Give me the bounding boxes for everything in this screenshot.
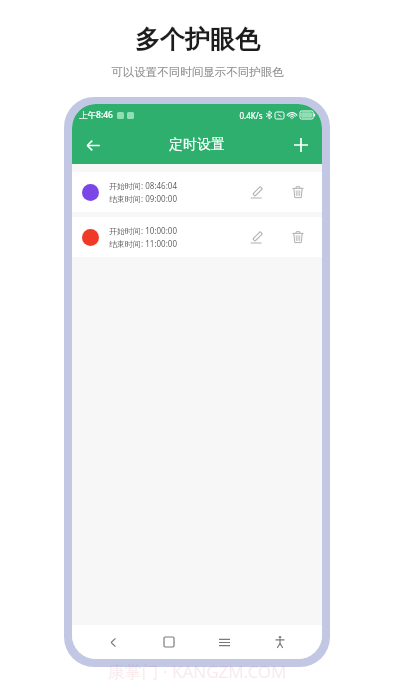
staticText: 0.4K/s — [239, 110, 263, 121]
staticText: 多个护眼色 — [135, 24, 260, 55]
button[interactable]: Back — [76, 128, 110, 162]
staticText: 康掌门 · KANGZM.COM — [107, 660, 287, 683]
button[interactable]: Delete — [284, 223, 312, 251]
staticText: 结束时间: 09:00:00 — [109, 193, 177, 204]
button[interactable]: Edit — [242, 223, 270, 251]
staticText: 定时设置 — [169, 136, 225, 154]
button[interactable]: Recents — [196, 625, 252, 659]
button[interactable]: Delete — [284, 178, 312, 206]
staticText: 结束时间: 11:00:00 — [109, 238, 177, 249]
button[interactable]: 开始时间: 08:46:04 — [72, 172, 322, 212]
button[interactable]: 开始时间: 10:00:00 — [72, 217, 322, 257]
staticText: 上午8:46 — [79, 109, 113, 121]
button[interactable]: Back — [86, 625, 141, 659]
button[interactable]: Edit — [242, 178, 270, 206]
button[interactable]: Home — [141, 625, 196, 659]
button[interactable]: Accessibility — [252, 625, 308, 659]
staticText: 开始时间: 08:46:04 — [109, 180, 177, 191]
button[interactable]: Add — [284, 128, 318, 162]
staticText: 可以设置不同时间显示不同护眼色 — [111, 65, 284, 79]
staticText: 开始时间: 10:00:00 — [109, 225, 177, 236]
